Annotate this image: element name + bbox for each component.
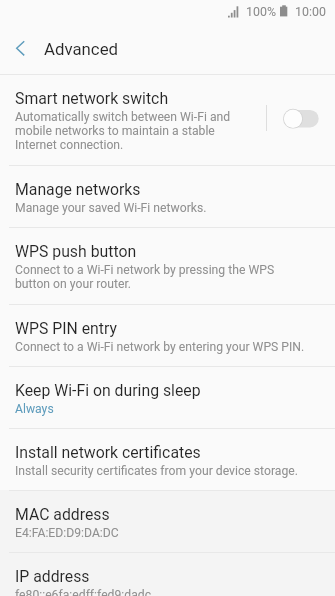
- other: Battery full: [280, 5, 288, 17]
- staticText: IP address: [15, 567, 90, 586]
- button[interactable]: WPS push button: [0, 228, 335, 304]
- staticText: Keep Wi-Fi on during sleep: [15, 381, 201, 400]
- staticText: Manage networks: [15, 180, 141, 199]
- staticText: Smart network switch: [15, 89, 169, 108]
- staticText: Manage your saved Wi-Fi networks.: [15, 201, 207, 215]
- staticText: Connect to a Wi-Fi network by entering y…: [15, 340, 305, 354]
- button[interactable]: Navigate up: [0, 28, 42, 74]
- button[interactable]: Keep Wi-Fi on during sleep: [0, 367, 335, 428]
- staticText: 10:00: [295, 4, 326, 19]
- staticText: Install security certificates from your …: [15, 464, 298, 478]
- button[interactable]: Install network certificates: [0, 429, 335, 490]
- button[interactable]: Manage networks: [0, 166, 335, 227]
- staticText: Advanced: [44, 39, 119, 59]
- button[interactable]: MAC address: [0, 491, 335, 552]
- staticText: WPS push button: [15, 242, 137, 261]
- staticText: Automatically switch between Wi-Fi and m…: [15, 110, 231, 152]
- staticText: Install network certificates: [15, 443, 201, 462]
- button[interactable]: WPS PIN entry: [0, 305, 335, 366]
- other: Signal strength: [228, 6, 239, 18]
- button[interactable]: IP address: [0, 553, 335, 596]
- staticText: fe80::e6fa:edff:fed9:dadc: [15, 588, 152, 596]
- button[interactable]: Smart network switch toggle: [274, 93, 328, 143]
- staticText: MAC address: [15, 505, 110, 524]
- staticText: WPS PIN entry: [15, 319, 117, 338]
- staticText: Always: [15, 402, 54, 416]
- button[interactable]: Smart network switch: [0, 75, 335, 165]
- staticText: E4:FA:ED:D9:DA:DC: [15, 526, 119, 540]
- staticText: 100%: [246, 4, 276, 19]
- staticText: Connect to a Wi-Fi network by pressing t…: [15, 263, 275, 291]
